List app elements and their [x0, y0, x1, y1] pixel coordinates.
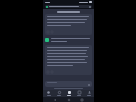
other: User avatar: [45, 38, 49, 42]
button[interactable]: Action: [45, 45, 92, 75]
button[interactable]: Back: [54, 99, 56, 101]
button[interactable]: Menu: [45, 5, 92, 8]
button[interactable]: Action: [45, 14, 92, 35]
button[interactable]: Chat: [64, 90, 74, 97]
button[interactable]: Home: [43, 90, 54, 97]
button[interactable]: Profile: [84, 90, 94, 97]
button[interactable]: Library: [74, 90, 84, 97]
button[interactable]: Explore: [54, 90, 64, 97]
button[interactable]: Send: [45, 81, 92, 87]
